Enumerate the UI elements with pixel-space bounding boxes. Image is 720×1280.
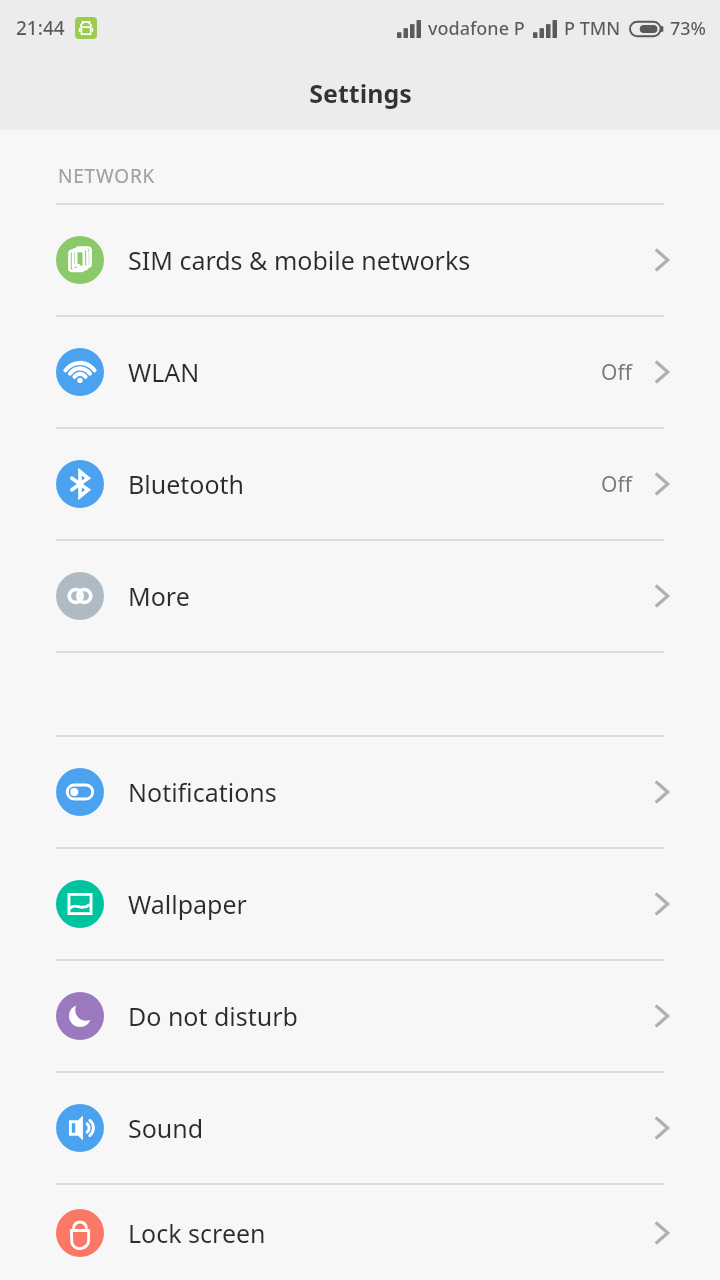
staticText: WLAN — [128, 355, 200, 389]
staticText: Wallpaper — [128, 887, 247, 921]
button[interactable]: More — [0, 541, 720, 651]
staticText: More — [128, 579, 190, 613]
staticText: 73% — [670, 16, 706, 41]
staticText: Bluetooth — [128, 467, 245, 501]
staticText: 21:44 — [16, 15, 65, 41]
button[interactable]: SIM cards & mobile networks — [0, 205, 720, 315]
button[interactable]: Do not disturb — [0, 961, 720, 1071]
staticText: Off — [601, 358, 632, 387]
button[interactable]: Sound — [0, 1073, 720, 1183]
button[interactable]: WLAN — [0, 317, 720, 427]
button[interactable]: Bluetooth — [0, 429, 720, 539]
staticText: P TMN — [564, 16, 621, 41]
button[interactable]: Wallpaper — [0, 849, 720, 959]
staticText: NETWORK — [58, 163, 156, 189]
staticText: Settings — [309, 76, 412, 110]
staticText: Notifications — [128, 775, 277, 809]
staticText: vodafone P — [428, 16, 525, 41]
button[interactable]: Notifications — [0, 737, 720, 847]
button[interactable]: Lock screen — [0, 1185, 720, 1280]
staticText: Lock screen — [128, 1216, 266, 1250]
staticText: Off — [601, 470, 632, 499]
staticText: SIM cards & mobile networks — [128, 243, 471, 277]
staticText: Do not disturb — [128, 999, 298, 1033]
staticText: Sound — [128, 1111, 204, 1145]
